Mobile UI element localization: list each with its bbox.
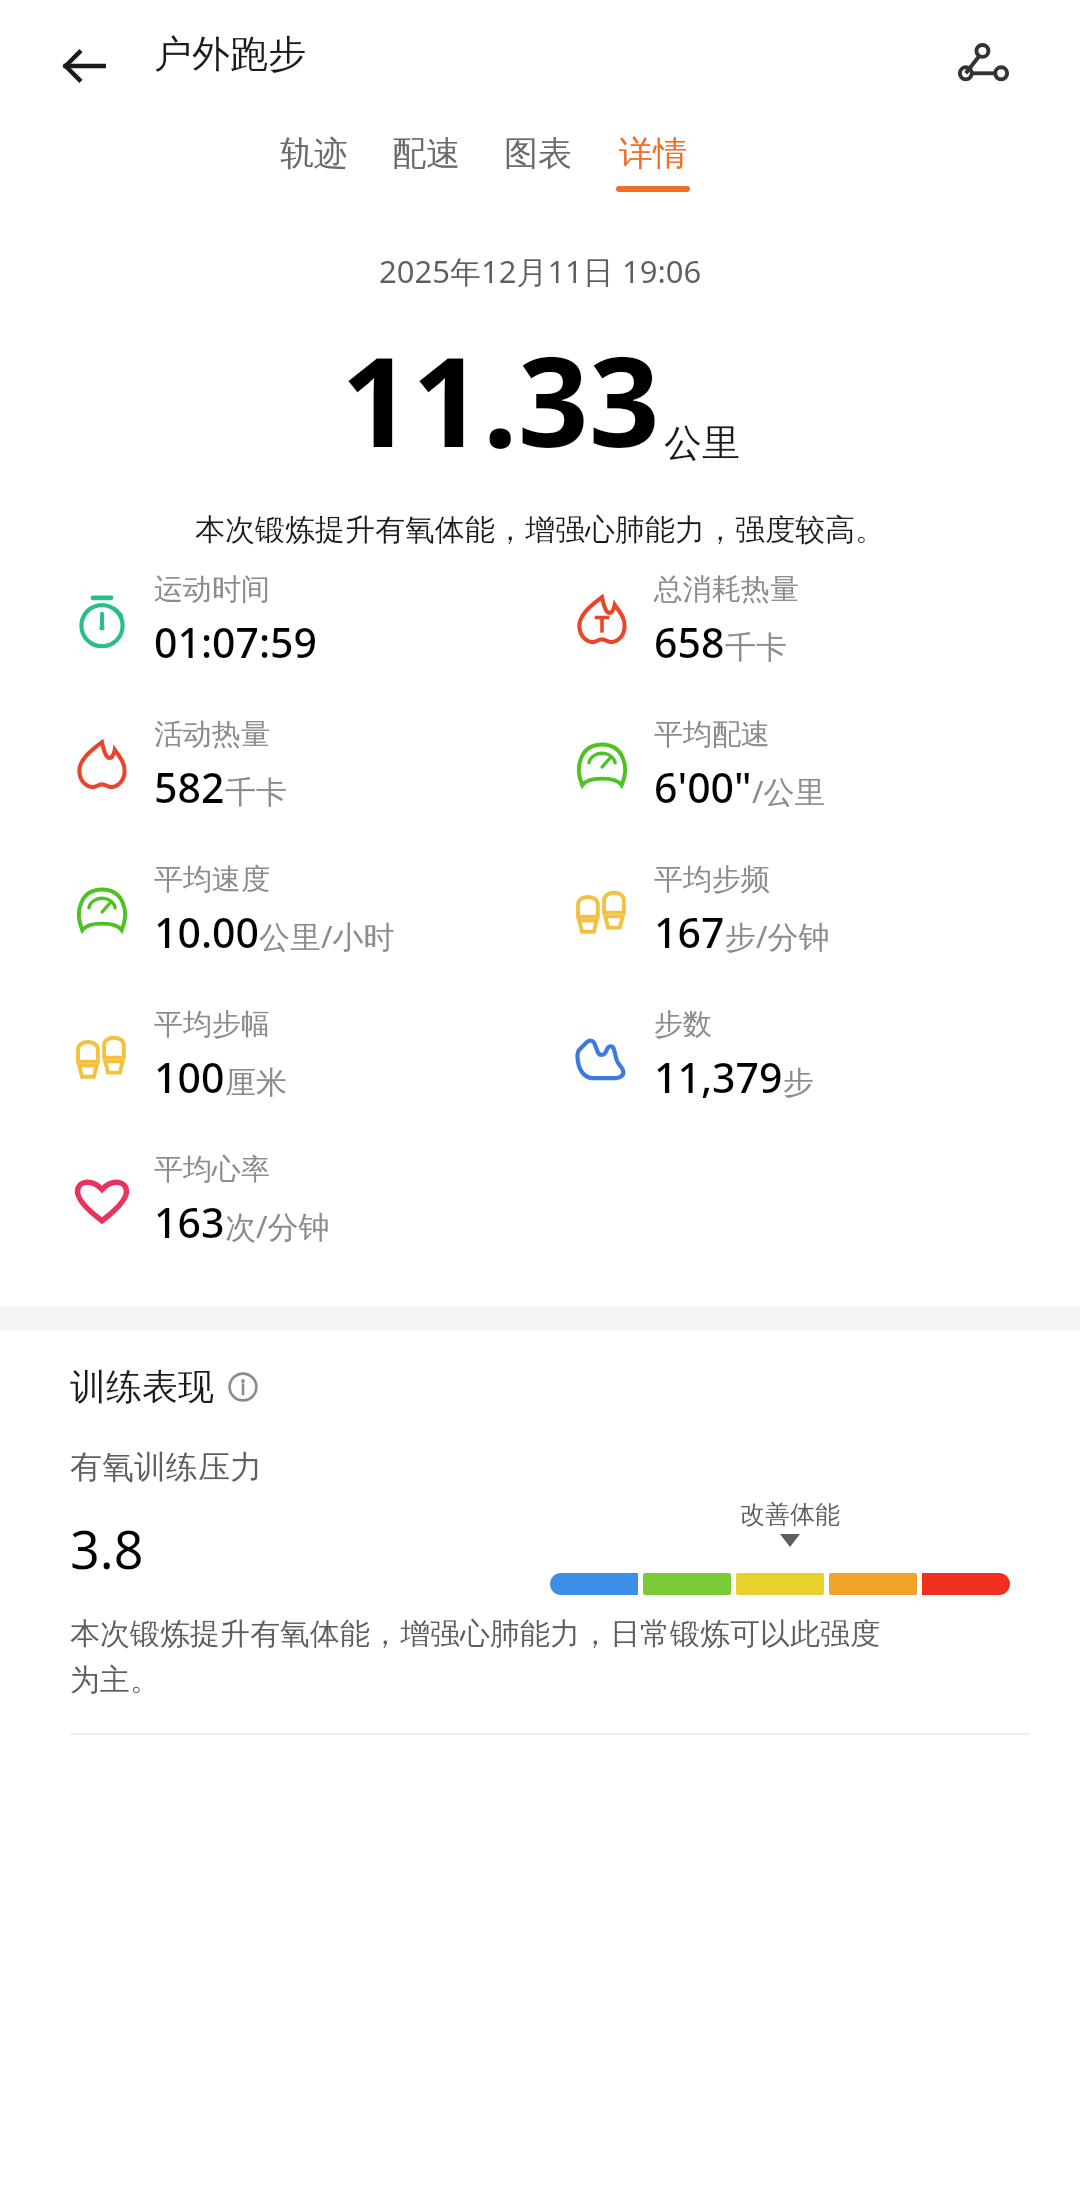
staticText: 6'00" (654, 759, 752, 815)
button[interactable]: 配速 (384, 132, 468, 186)
staticText: 总消耗热量 (654, 571, 799, 608)
staticText: 步数 (654, 1006, 712, 1043)
staticText: 10.00 (154, 904, 259, 960)
staticText: 平均步频 (654, 861, 770, 898)
staticText: 01:07:59 (154, 614, 318, 670)
button[interactable]: 平均步频 (564, 861, 830, 960)
staticText: 次/分钟 (225, 1205, 330, 1247)
staticText: 训练表现 (70, 1364, 214, 1409)
staticText: 运动时间 (154, 571, 270, 608)
button[interactable]: 详情 (608, 132, 698, 192)
staticText: 改善体能 (740, 1499, 840, 1530)
staticText: 582 (154, 759, 225, 815)
staticText: 有氧训练压力 (70, 1447, 262, 1487)
button[interactable]: Back (48, 30, 120, 102)
staticText: 本次锻炼提升有氧体能，增强心肺能力，强度较高。 (195, 511, 885, 549)
staticText: 厘米 (225, 1063, 287, 1102)
button[interactable]: 步数 (564, 1006, 814, 1105)
button[interactable]: 活动热量 (64, 716, 287, 815)
staticText: 千卡 (725, 628, 787, 667)
staticText: 3.8 (70, 1513, 144, 1584)
staticText: 公里 (664, 419, 740, 467)
staticText: 2025年12月11日 19:06 (379, 250, 702, 292)
button[interactable]: 平均步幅 (64, 1006, 287, 1105)
staticText: 平均心率 (154, 1151, 270, 1188)
button[interactable]: 平均速度 (64, 861, 395, 960)
staticText: 户外跑步 (154, 30, 306, 78)
button[interactable]: 图表 (496, 132, 580, 186)
button[interactable]: 平均心率 (64, 1151, 330, 1250)
staticText: 100 (154, 1049, 225, 1105)
staticText: 167 (654, 904, 725, 960)
staticText: 本次锻炼提升有氧体能，增强心肺能力，日常锻炼可以此强度 (70, 1615, 880, 1653)
staticText: 配速 (392, 132, 460, 175)
staticText: /公里 (752, 770, 826, 812)
staticText: 千卡 (225, 773, 287, 812)
staticText: 平均配速 (654, 716, 770, 753)
button[interactable]: 总消耗热量 (564, 571, 799, 670)
staticText: 658 (654, 614, 725, 670)
button[interactable]: 训练表现 (70, 1364, 1080, 1409)
button[interactable]: 轨迹 (272, 132, 356, 186)
staticText: 163 (154, 1194, 225, 1250)
button[interactable]: Share (944, 26, 1024, 106)
staticText: 步 (783, 1063, 814, 1102)
button[interactable]: 平均配速 (564, 716, 826, 815)
staticText: 平均步幅 (154, 1006, 270, 1043)
staticText: 11.33 (341, 314, 660, 483)
staticText: 11,379 (654, 1049, 783, 1105)
staticText: 为主。 (70, 1661, 160, 1699)
staticText: 步/分钟 (725, 915, 830, 957)
staticText: 公里/小时 (259, 915, 395, 957)
staticText: 详情 (619, 132, 687, 175)
staticText: 平均速度 (154, 861, 270, 898)
button[interactable]: 运动时间 (64, 571, 318, 670)
staticText: 轨迹 (280, 132, 348, 175)
staticText: 活动热量 (154, 716, 270, 753)
staticText: 图表 (504, 132, 572, 175)
